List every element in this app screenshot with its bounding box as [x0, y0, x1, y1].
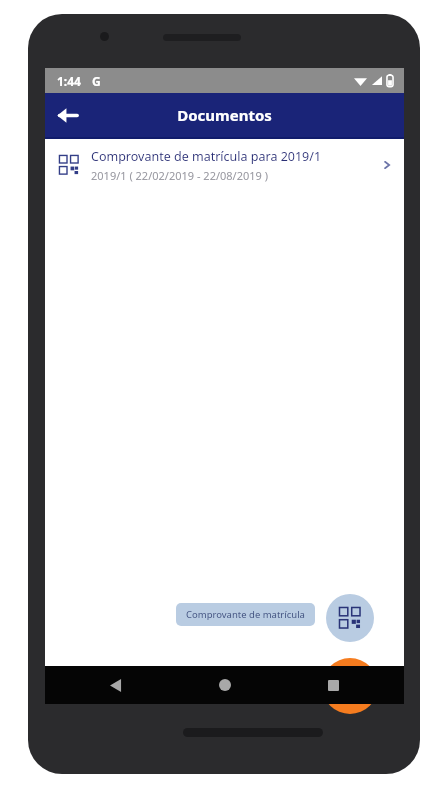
- staticText: 1:44: [57, 73, 81, 89]
- button[interactable]: Recent apps: [314, 666, 352, 704]
- staticText: Comprovante de matrícula para 2019/1: [91, 148, 322, 165]
- button[interactable]: Close: [322, 658, 378, 714]
- button[interactable]: Comprovante de matrícula: [176, 603, 315, 626]
- staticText: G: [92, 73, 101, 89]
- button[interactable]: Home: [206, 666, 244, 704]
- button[interactable]: Comprovante de matrícula: [326, 594, 374, 642]
- staticText: Comprovante de matrícula: [186, 608, 305, 621]
- staticText: Documentos: [177, 105, 272, 125]
- button[interactable]: Comprovante de matrícula para 2019/1: [45, 139, 404, 191]
- button[interactable]: Back: [45, 93, 89, 137]
- button[interactable]: Back: [97, 666, 135, 704]
- staticText: 2019/1 ( 22/02/2019 - 22/08/2019 ): [91, 168, 269, 183]
